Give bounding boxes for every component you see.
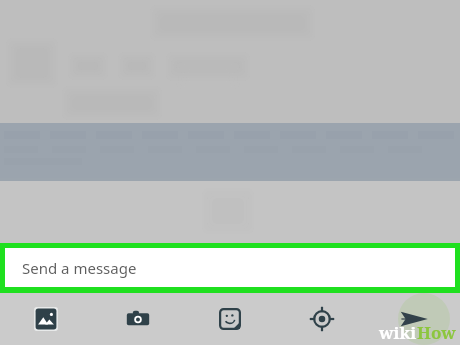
staticText: Send a message <box>22 258 137 278</box>
button[interactable]: Share location <box>276 293 368 345</box>
button[interactable]: Take photo <box>92 293 184 345</box>
button[interactable]: Send image <box>0 293 92 345</box>
button[interactable]: Send a message <box>5 248 455 287</box>
button[interactable]: Send sticker <box>184 293 276 345</box>
staticText: wiki <box>379 321 417 344</box>
staticText: How <box>417 321 456 344</box>
button[interactable]: Send <box>368 293 460 345</box>
